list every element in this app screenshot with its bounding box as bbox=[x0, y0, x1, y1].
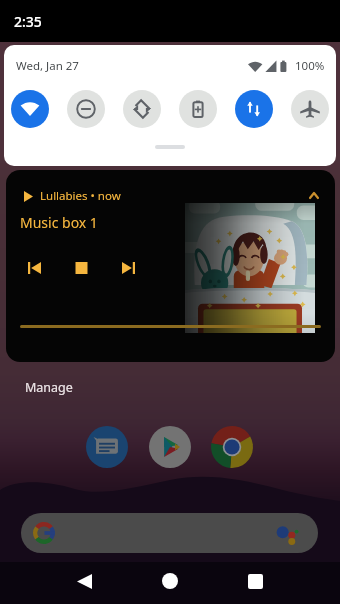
button[interactable]: Recents bbox=[237, 563, 273, 599]
staticText: 100% bbox=[295, 58, 325, 74]
staticText: Wed, Jan 27 bbox=[16, 58, 79, 74]
button[interactable]: Play Store bbox=[149, 426, 191, 468]
button[interactable]: Wi-Fi bbox=[11, 90, 49, 128]
button[interactable]: Manage bbox=[25, 379, 73, 396]
button[interactable]: Stop bbox=[69, 256, 93, 280]
button[interactable]: Search bbox=[21, 513, 318, 553]
staticText: Lullabies • now bbox=[40, 188, 121, 204]
button[interactable]: Back bbox=[66, 563, 102, 599]
button[interactable]: Next bbox=[116, 256, 140, 280]
button[interactable]: Messages bbox=[86, 426, 128, 468]
button[interactable]: Collapse bbox=[301, 182, 327, 208]
staticText: Music box 1 bbox=[20, 213, 98, 232]
button[interactable]: Airplane mode bbox=[291, 90, 329, 128]
button[interactable]: Auto-rotate bbox=[123, 90, 161, 128]
button[interactable]: Battery saver bbox=[179, 90, 217, 128]
button[interactable]: Previous bbox=[22, 256, 46, 280]
button[interactable]: Chrome bbox=[211, 426, 253, 468]
button[interactable]: Home bbox=[152, 563, 188, 599]
button[interactable]: Do not disturb bbox=[67, 90, 105, 128]
staticText: 2:35 bbox=[14, 12, 42, 31]
button[interactable]: Mobile data bbox=[235, 90, 273, 128]
